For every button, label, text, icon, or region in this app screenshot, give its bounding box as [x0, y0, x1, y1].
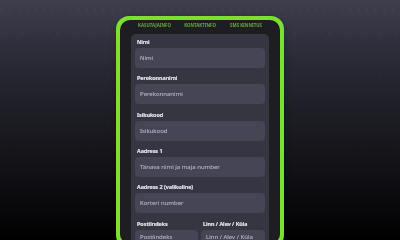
button[interactable]: Tänava nimi ja maja number — [135, 157, 265, 177]
staticText: Aadress 2 (valikuline) — [137, 183, 194, 190]
staticText: Postiindeks — [137, 220, 168, 227]
staticText: Perekonnanimi — [140, 90, 183, 98]
staticText: KONTAKTINFO — [184, 22, 216, 28]
button[interactable]: KASUTAJAINFO — [131, 20, 177, 29]
staticText: Nimi — [140, 54, 154, 62]
button[interactable]: Postiindeks — [135, 230, 198, 240]
staticText: Perekonnanimi — [137, 74, 178, 81]
button[interactable]: SMS KINNITUS — [223, 20, 269, 29]
staticText: Nimi — [137, 38, 150, 45]
staticText: Isikukood — [137, 111, 164, 118]
button[interactable]: Perekonnanimi — [135, 84, 265, 104]
button[interactable]: Korteri number — [135, 193, 265, 213]
staticText: Linn / Alev / Küla — [203, 220, 248, 227]
staticText: Postiindeks — [140, 233, 173, 240]
staticText: SMS KINNITUS — [230, 22, 262, 28]
staticText: KASUTAJAINFO — [138, 22, 171, 28]
button[interactable]: Isikukood — [135, 121, 265, 141]
staticText: Linn / Alev / Küla — [206, 233, 253, 240]
staticText: Isikukood — [140, 127, 168, 135]
button[interactable]: KONTAKTINFO — [177, 20, 223, 29]
staticText: Tänava nimi ja maja number — [140, 163, 220, 171]
button[interactable]: Linn / Alev / Küla — [201, 230, 265, 240]
button[interactable]: Nimi — [135, 48, 265, 68]
staticText: Korteri number — [140, 199, 184, 207]
staticText: Aadress 1 — [137, 147, 163, 154]
